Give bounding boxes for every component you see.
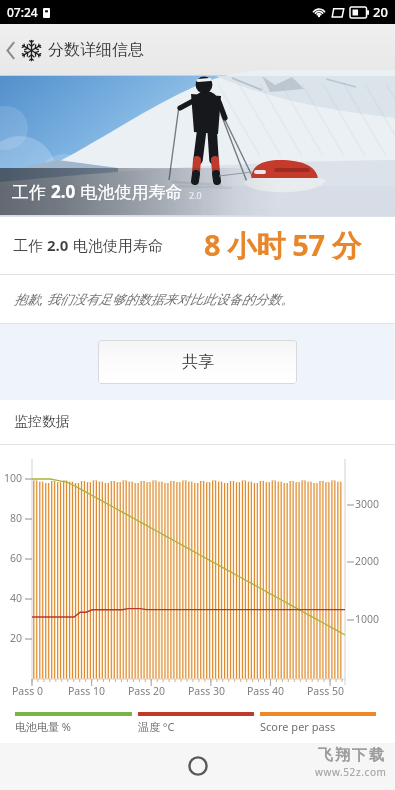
staticText: 80 bbox=[10, 511, 23, 525]
button[interactable]: Home bbox=[181, 749, 215, 783]
staticText: 2000 bbox=[355, 554, 380, 568]
staticText: 电池使用寿命 bbox=[69, 235, 163, 255]
staticText: 40 bbox=[10, 591, 23, 605]
staticText: 8 小时 57 分 bbox=[204, 225, 361, 265]
staticText: Pass 50 bbox=[307, 684, 345, 698]
staticText: 2.0 bbox=[189, 189, 202, 201]
staticText: Score per pass bbox=[260, 719, 336, 734]
staticText: 20 bbox=[373, 3, 388, 21]
staticText: Pass 30 bbox=[188, 684, 226, 698]
staticText: Pass 10 bbox=[68, 684, 106, 698]
staticText: 100 bbox=[4, 471, 23, 485]
staticText: Pass 20 bbox=[128, 684, 166, 698]
staticText: 电池使用寿命 bbox=[76, 180, 183, 203]
staticText: 工作 bbox=[13, 235, 47, 255]
staticText: 抱歉, 我们没有足够的数据来对比此设备的分数。 bbox=[14, 290, 294, 308]
staticText: 07:24 bbox=[7, 4, 38, 20]
staticText: 电池电量 % bbox=[15, 719, 72, 734]
staticText: 分数详细信息 bbox=[48, 40, 144, 60]
staticText: www.52z.com bbox=[315, 765, 387, 779]
staticText: 温度 °C bbox=[138, 719, 175, 734]
staticText: 3000 bbox=[355, 497, 380, 511]
button[interactable]: 共享 bbox=[98, 340, 297, 384]
staticText: 飞翔下载 bbox=[317, 746, 385, 765]
button[interactable]: Back bbox=[2, 35, 18, 65]
staticText: 监控数据 bbox=[14, 413, 70, 431]
staticText: Pass 40 bbox=[247, 684, 285, 698]
staticText: 2.0 bbox=[47, 235, 69, 255]
staticText: 60 bbox=[10, 551, 23, 565]
staticText: 工作 bbox=[12, 180, 51, 203]
staticText: Pass 0 bbox=[12, 684, 44, 698]
staticText: 共享 bbox=[182, 352, 214, 372]
staticText: 20 bbox=[10, 631, 23, 645]
staticText: 2.0 bbox=[51, 180, 76, 203]
staticText: 1000 bbox=[355, 612, 380, 626]
